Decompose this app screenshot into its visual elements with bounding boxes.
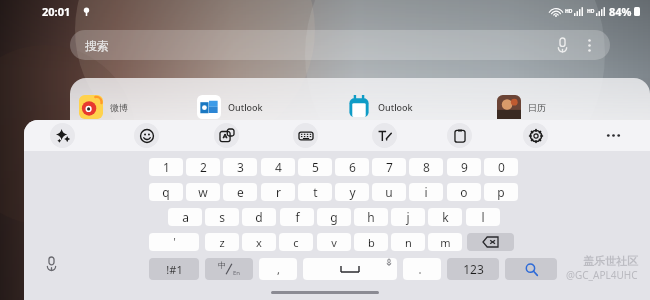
- staticText: i: [424, 184, 428, 200]
- button[interactable]: 6: [335, 158, 369, 176]
- staticText: n: [405, 235, 412, 250]
- button[interactable]: n: [391, 233, 425, 251]
- button[interactable]: Outlook: [196, 94, 346, 120]
- staticText: 20:01: [42, 4, 71, 19]
- staticText: HD: [587, 8, 595, 15]
- staticText: o: [460, 184, 468, 200]
- button[interactable]: c: [279, 233, 313, 251]
- staticText: p: [497, 184, 505, 200]
- button[interactable]: Settings: [523, 123, 548, 148]
- button[interactable]: o: [447, 183, 481, 201]
- button[interactable]: y: [335, 183, 369, 201]
- button[interactable]: v: [317, 233, 351, 251]
- button[interactable]: b: [354, 233, 388, 251]
- button[interactable]: Space: [303, 258, 397, 280]
- button[interactable]: l: [466, 208, 500, 226]
- button[interactable]: d: [242, 208, 276, 226]
- staticText: Outlook: [228, 101, 263, 113]
- staticText: b: [368, 235, 375, 250]
- button[interactable]: g: [317, 208, 351, 226]
- button[interactable]: 1: [149, 158, 183, 176]
- button[interactable]: Voice search: [552, 35, 572, 55]
- button[interactable]: 微博: [78, 94, 196, 120]
- staticText: En: [233, 269, 241, 277]
- staticText: w: [198, 184, 208, 200]
- staticText: d: [255, 209, 263, 225]
- button[interactable]: Clipboard: [447, 123, 472, 148]
- staticText: 日历: [528, 102, 546, 113]
- staticText: 9: [461, 159, 468, 175]
- staticText: 84%: [609, 4, 632, 19]
- button[interactable]: a: [168, 208, 202, 226]
- button[interactable]: p: [484, 183, 518, 201]
- button[interactable]: j: [391, 208, 425, 226]
- button[interactable]: Voice input: [39, 251, 63, 275]
- button[interactable]: m: [428, 233, 462, 251]
- button[interactable]: u: [372, 183, 406, 201]
- staticText: z: [219, 235, 225, 250]
- button[interactable]: !#1: [149, 258, 199, 280]
- button[interactable]: q: [149, 183, 183, 201]
- button[interactable]: Backspace: [467, 233, 514, 251]
- staticText: @GC_APL4UHC: [566, 268, 638, 282]
- button[interactable]: 0: [484, 158, 518, 176]
- staticText: 5: [312, 159, 319, 175]
- staticText: m: [440, 235, 451, 250]
- button[interactable]: h: [354, 208, 388, 226]
- button[interactable]: 123: [447, 258, 499, 280]
- staticText: y: [349, 184, 356, 200]
- button[interactable]: 2: [186, 158, 220, 176]
- button[interactable]: Search: [505, 258, 557, 280]
- button[interactable]: 3: [223, 158, 257, 176]
- staticText: !#1: [166, 262, 183, 277]
- staticText: 微博: [110, 102, 128, 113]
- button[interactable]: More: [602, 124, 624, 146]
- button[interactable]: 。: [403, 258, 441, 280]
- button[interactable]: 搜索: [70, 30, 610, 60]
- button[interactable]: i: [409, 183, 443, 201]
- button[interactable]: 4: [261, 158, 295, 176]
- button[interactable]: f: [280, 208, 314, 226]
- button[interactable]: ': [149, 233, 199, 251]
- button[interactable]: e: [223, 183, 257, 201]
- button[interactable]: 5: [298, 158, 332, 176]
- staticText: j: [406, 209, 410, 225]
- button[interactable]: 日历: [496, 94, 640, 120]
- button[interactable]: r: [261, 183, 295, 201]
- button[interactable]: 8: [409, 158, 443, 176]
- button[interactable]: x: [242, 233, 276, 251]
- button[interactable]: 7: [372, 158, 406, 176]
- staticText: c: [293, 235, 299, 250]
- staticText: s: [219, 209, 225, 225]
- button[interactable]: More options: [580, 36, 598, 54]
- button[interactable]: w: [186, 183, 220, 201]
- staticText: v: [331, 235, 337, 250]
- button[interactable]: Switch Chinese English: [205, 258, 253, 280]
- button[interactable]: k: [428, 208, 462, 226]
- button[interactable]: Handwriting: [372, 123, 397, 148]
- staticText: 中: [218, 260, 226, 270]
- button[interactable]: ,: [259, 258, 297, 280]
- button[interactable]: AI assist: [50, 123, 75, 148]
- staticText: 6: [349, 159, 356, 175]
- staticText: g: [330, 209, 338, 225]
- staticText: 7: [386, 159, 393, 175]
- button[interactable]: Translate: [214, 123, 239, 148]
- staticText: 1: [163, 159, 170, 175]
- staticText: x: [256, 235, 262, 250]
- staticText: f: [295, 209, 300, 225]
- staticText: 8: [423, 159, 430, 175]
- staticText: HD: [565, 8, 573, 15]
- button[interactable]: Outlook: [346, 94, 496, 120]
- staticText: 4: [275, 159, 282, 175]
- button[interactable]: 9: [447, 158, 481, 176]
- staticText: k: [442, 209, 449, 225]
- button[interactable]: s: [205, 208, 239, 226]
- staticText: 盖乐世社区: [583, 254, 638, 268]
- button[interactable]: z: [205, 233, 239, 251]
- staticText: 0: [498, 159, 505, 175]
- button[interactable]: Emoji: [134, 123, 159, 148]
- button[interactable]: Keyboard layout: [293, 123, 318, 148]
- button[interactable]: t: [298, 183, 332, 201]
- staticText: r: [276, 184, 281, 200]
